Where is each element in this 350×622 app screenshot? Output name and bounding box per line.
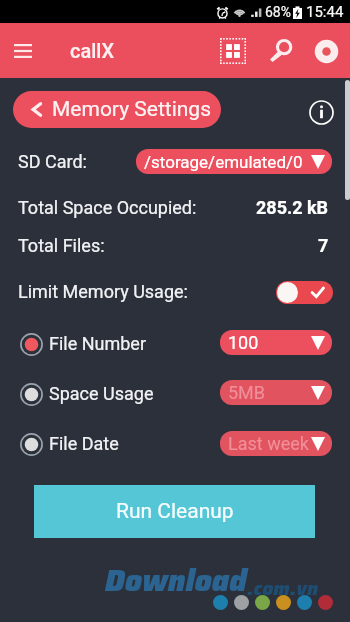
staticText: 68%	[265, 4, 291, 20]
button[interactable]: Selected option	[16, 329, 46, 359]
staticText: 7	[318, 235, 329, 256]
button[interactable]: 5MB	[220, 380, 332, 405]
button[interactable]: Last week	[220, 431, 332, 456]
staticText: Space Usage	[49, 383, 154, 404]
staticText: 285.2 kB	[256, 197, 329, 218]
staticText: /storage/emulated/0	[144, 152, 303, 172]
staticText: SD Card:	[18, 151, 87, 172]
staticText: File Number	[49, 333, 147, 354]
button[interactable]: Apps grid	[213, 31, 253, 71]
staticText: 5MB	[228, 382, 266, 403]
staticText: callX	[70, 39, 115, 62]
button[interactable]: /storage/emulated/0	[136, 149, 332, 174]
button[interactable]: Info	[303, 94, 339, 130]
button[interactable]: Option	[16, 379, 46, 409]
staticText: Total Files:	[18, 235, 105, 256]
button[interactable]: Run Cleanup	[34, 485, 315, 538]
staticText: .com.vn	[247, 573, 319, 603]
staticText: Run Cleanup	[116, 499, 234, 524]
button[interactable]: Limit memory usage	[276, 281, 333, 304]
button[interactable]: Search	[260, 31, 300, 71]
button[interactable]: Menu	[4, 32, 41, 69]
button[interactable]: Record	[306, 31, 346, 71]
staticText: File Date	[49, 433, 119, 454]
staticText: Download	[105, 557, 247, 604]
staticText: Memory Settings	[52, 97, 211, 122]
staticText: 15:44	[306, 3, 344, 21]
staticText: 100	[228, 332, 259, 353]
staticText: Last week	[228, 433, 309, 454]
button[interactable]: Memory Settings	[13, 91, 221, 128]
button[interactable]: Option	[16, 429, 46, 459]
staticText: Limit Memory Usage:	[18, 281, 188, 302]
staticText: Total Space Occupied:	[18, 197, 197, 218]
button[interactable]: 100	[220, 330, 332, 355]
